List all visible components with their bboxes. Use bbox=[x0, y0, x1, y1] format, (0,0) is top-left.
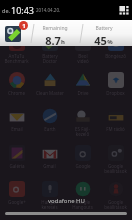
staticText: Beol videó bbox=[77, 53, 89, 64]
staticText: Google Hangouts bbox=[72, 199, 93, 210]
button[interactable]: Hangos keresés bbox=[33, 181, 66, 215]
staticText: Email bbox=[11, 126, 23, 132]
staticText: vodafone HU bbox=[48, 197, 85, 205]
staticText: 10:43 bbox=[11, 4, 35, 16]
button[interactable]: Chrome bbox=[0, 72, 33, 106]
button[interactable]: Battery Doctor bbox=[3, 21, 28, 45]
button[interactable]: Close notifications bbox=[5, 212, 127, 215]
staticText: 1 bbox=[22, 22, 26, 30]
button[interactable]: Battery bbox=[79, 20, 128, 46]
staticText: FM rádió bbox=[106, 126, 125, 132]
staticText: % bbox=[107, 38, 113, 46]
staticText: Google beállítások bbox=[104, 163, 127, 174]
staticText: Remaining bbox=[42, 25, 68, 32]
button[interactable]: Drive bbox=[66, 72, 99, 106]
staticText: Battery Doctor bbox=[42, 53, 58, 64]
button[interactable]: Earth bbox=[33, 108, 66, 142]
staticText: h bbox=[61, 38, 65, 46]
staticText: Earth bbox=[44, 126, 56, 132]
staticText: AnTuTu Benchmark bbox=[4, 53, 29, 64]
staticText: 8.7 bbox=[45, 33, 61, 46]
button[interactable]: Galéria bbox=[0, 145, 33, 179]
staticText: 2014.04.20. bbox=[36, 7, 61, 13]
staticText: Böngésző bbox=[105, 53, 126, 59]
staticText: Gmail bbox=[43, 163, 56, 169]
button[interactable]: Gmail bbox=[33, 145, 66, 179]
button[interactable]: Google beállítások bbox=[99, 181, 132, 215]
staticText: Drive bbox=[77, 90, 89, 96]
button[interactable]: Remaining bbox=[30, 20, 79, 46]
staticText: Chrome bbox=[8, 90, 25, 96]
button[interactable]: AnTuTu Benchmark bbox=[0, 35, 33, 69]
button[interactable]: ES Fájl- kezelő bbox=[66, 108, 99, 142]
button[interactable]: Email bbox=[0, 108, 33, 142]
staticText: Galéria bbox=[9, 163, 25, 169]
staticText: Hangos keresés bbox=[41, 199, 58, 210]
button[interactable]: Böngésző bbox=[99, 35, 132, 69]
button[interactable]: Dropbox bbox=[99, 72, 132, 106]
staticText: Google+ bbox=[8, 199, 26, 205]
staticText: ES Fájl- kezelő bbox=[75, 126, 90, 137]
button[interactable]: Battery Doctor bbox=[33, 35, 66, 69]
staticText: de. bbox=[2, 7, 10, 14]
button[interactable]: Google bbox=[66, 145, 99, 179]
staticText: Google bbox=[75, 163, 91, 169]
button[interactable]: Google+ bbox=[0, 181, 33, 215]
staticText: Clean Master bbox=[36, 90, 64, 96]
button[interactable]: Google Hangouts bbox=[66, 181, 99, 215]
button[interactable]: Google beállítások bbox=[99, 145, 132, 179]
staticText: Google beállítások bbox=[104, 199, 127, 210]
button[interactable]: Clean Master bbox=[33, 72, 66, 106]
button[interactable]: Quick settings bbox=[119, 5, 129, 15]
button[interactable]: FM rádió bbox=[99, 108, 132, 142]
button[interactable]: Beol videó bbox=[66, 35, 99, 69]
staticText: Battery bbox=[95, 25, 113, 32]
staticText: Dropbox bbox=[106, 90, 125, 96]
staticText: 45 bbox=[94, 33, 107, 46]
